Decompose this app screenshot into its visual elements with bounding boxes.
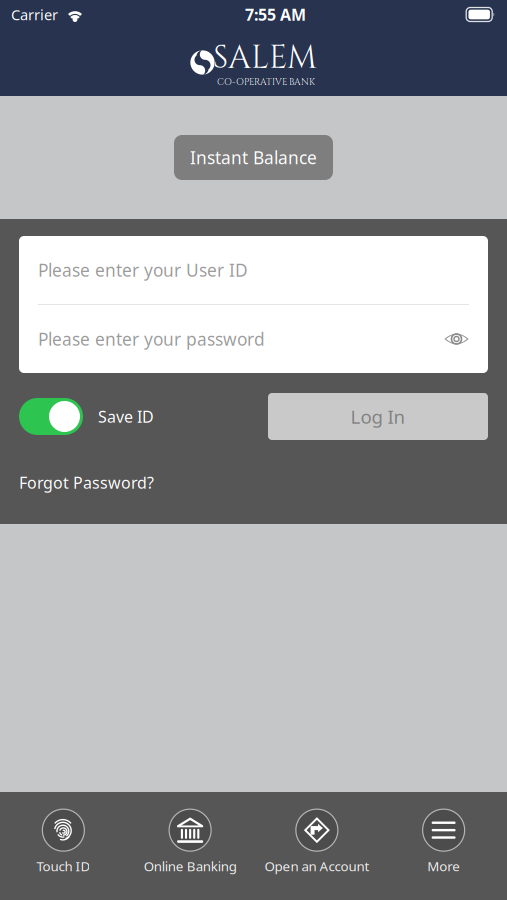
button[interactable]: Instant Balance [174, 135, 333, 180]
staticText: Please enter your User ID [38, 258, 248, 281]
staticText: CO-OPERATIVE BANK [217, 76, 315, 88]
staticText: Log In [350, 404, 405, 429]
button[interactable]: Forgot Password? [19, 472, 154, 493]
staticText: Forgot Password? [19, 472, 154, 493]
button[interactable]: Show password [444, 329, 469, 348]
staticText: Touch ID [36, 857, 90, 875]
button[interactable]: More [380, 809, 507, 875]
staticText: Online Banking [144, 857, 237, 875]
button[interactable]: Touch ID [0, 809, 127, 875]
staticText: Please enter your password [38, 327, 265, 350]
staticText: More [427, 857, 460, 875]
staticText: 7:55 AM [245, 4, 306, 25]
button[interactable]: Online Banking [127, 809, 254, 875]
button[interactable]: Open an Account [253, 809, 380, 875]
staticText: Open an Account [264, 857, 369, 875]
button[interactable]: Log In [268, 393, 488, 440]
button[interactable]: Save ID [19, 398, 83, 435]
staticText: Instant Balance [190, 146, 317, 169]
staticText: SALEM [213, 37, 317, 80]
staticText: Save ID [98, 406, 154, 427]
staticText: Carrier [11, 5, 58, 24]
